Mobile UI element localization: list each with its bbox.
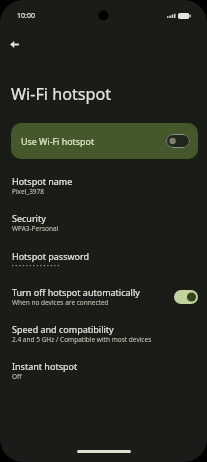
staticText: Wi-Fi hotspot bbox=[11, 83, 112, 105]
staticText: Speed and compatibility bbox=[12, 323, 114, 335]
staticText: When no devices are connected bbox=[12, 298, 109, 307]
staticText: WPA3-Personal bbox=[12, 224, 59, 233]
button[interactable]: Use Wi-Fi hotspot bbox=[11, 123, 198, 159]
button[interactable]: Use Wi-Fi hotspot toggle bbox=[166, 134, 190, 148]
staticText: Use Wi-Fi hotspot bbox=[21, 135, 95, 147]
staticText: Instant hotspot bbox=[12, 360, 78, 372]
button[interactable]: Security bbox=[0, 204, 207, 241]
staticText: 2.4 and 5 GHz / Compatible with most dev… bbox=[12, 335, 152, 344]
staticText: Turn off hotspot automatically bbox=[12, 286, 140, 298]
button[interactable]: Hotspot name bbox=[0, 167, 207, 204]
staticText: Hotspot name bbox=[12, 175, 73, 187]
button[interactable]: Instant hotspot bbox=[0, 352, 207, 389]
staticText: 10:00 bbox=[17, 11, 35, 21]
button[interactable]: Hotspot password bbox=[0, 241, 207, 278]
staticText: Pixel_3978 bbox=[12, 187, 45, 196]
staticText: Hotspot password bbox=[12, 250, 90, 262]
button[interactable]: Turn off hotspot automatically toggle bbox=[174, 290, 198, 304]
button[interactable]: Speed and compatibility bbox=[0, 315, 207, 352]
staticText: Security bbox=[12, 212, 46, 224]
button[interactable]: Back bbox=[4, 34, 25, 55]
staticText: Off bbox=[12, 372, 22, 381]
button[interactable]: Turn off hotspot automatically bbox=[0, 278, 207, 315]
